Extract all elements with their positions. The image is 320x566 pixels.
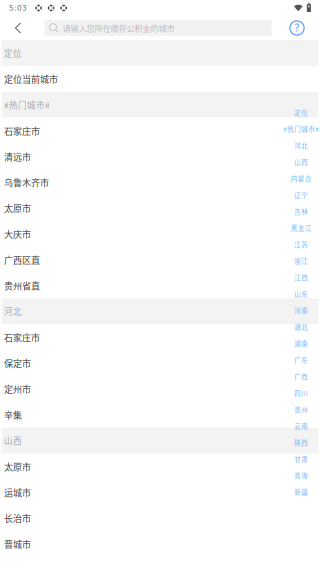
staticText: 湖南 (294, 339, 308, 348)
staticText: 江西 (294, 273, 308, 282)
staticText: 吉林 (294, 207, 308, 216)
button[interactable]: 浙江 (281, 253, 320, 269)
staticText: 长治市 (4, 511, 31, 525)
button[interactable]: 江西 (281, 269, 320, 286)
button[interactable]: 新疆 (281, 484, 320, 500)
staticText: 定位 (4, 47, 22, 59)
button[interactable]: 吉林 (281, 203, 320, 220)
staticText: 河北 (294, 141, 308, 150)
staticText: 乌鲁木齐市 (4, 176, 49, 189)
staticText: 新疆 (294, 487, 308, 497)
staticText: ? (294, 21, 300, 34)
button[interactable]: 石家庄市 (0, 324, 320, 350)
button[interactable]: 黑龙江 (281, 220, 320, 236)
staticText: 广西 (294, 372, 308, 381)
staticText: 云南 (294, 421, 308, 431)
staticText: 内蒙古 (291, 174, 312, 183)
button[interactable]: 请输入您所在缴存公积金的城市 (44, 20, 271, 36)
button[interactable]: 云南 (281, 418, 320, 434)
staticText: 清远市 (4, 150, 31, 163)
staticText: 湖北 (294, 322, 308, 332)
staticText: 定位 (294, 108, 308, 117)
staticText: 河北 (4, 305, 22, 318)
button[interactable]: 定州市 (0, 376, 320, 402)
button[interactable]: 太原市 (0, 454, 320, 479)
button[interactable]: 定位 (281, 104, 320, 121)
button[interactable]: #热门城市# (281, 121, 320, 137)
staticText: 石家庄市 (4, 124, 40, 137)
staticText: 四川 (294, 388, 308, 398)
staticText: 辽宁 (294, 190, 308, 200)
staticText: 运城市 (4, 486, 31, 499)
staticText: 江苏 (294, 240, 308, 249)
button[interactable]: 山西 (281, 154, 320, 170)
button[interactable]: 贵州 (281, 401, 320, 418)
staticText: 山西 (294, 157, 308, 167)
button[interactable]: 内蒙古 (281, 170, 320, 187)
staticText: 太原市 (4, 201, 31, 215)
button[interactable]: 返回 (0, 16, 36, 40)
staticText: 请输入您所在缴存公积金的城市 (63, 22, 175, 34)
staticText: 定州市 (4, 382, 31, 395)
button[interactable]: 定位当前城市 (0, 66, 320, 92)
button[interactable]: 石家庄市 (0, 118, 320, 144)
button[interactable]: 晋城市 (0, 531, 320, 557)
staticText: 大庆市 (4, 227, 31, 240)
button[interactable]: 太原市 (0, 195, 320, 221)
button[interactable]: 帮助 (285, 16, 309, 40)
button[interactable]: 陕西 (281, 434, 320, 451)
staticText: 石家庄市 (4, 331, 40, 344)
staticText: 陕西 (294, 438, 308, 447)
button[interactable]: 大庆市 (0, 221, 320, 247)
button[interactable]: 四川 (281, 385, 320, 401)
button[interactable]: 清远市 (0, 144, 320, 169)
button[interactable]: 辽宁 (281, 187, 320, 203)
button[interactable]: 乌鲁木齐市 (0, 169, 320, 195)
staticText: 山东 (294, 289, 308, 299)
staticText: 甘肃 (294, 454, 308, 464)
staticText: 浙江 (294, 256, 308, 266)
staticText: 黑龙江 (291, 223, 312, 233)
button[interactable]: 山东 (281, 286, 320, 302)
button[interactable]: 湖南 (281, 335, 320, 352)
button[interactable]: 青海 (281, 467, 320, 484)
button[interactable]: 广西 (281, 368, 320, 385)
button[interactable]: 长治市 (0, 505, 320, 531)
staticText: #热门城市# (283, 124, 319, 134)
button[interactable]: 甘肃 (281, 451, 320, 467)
staticText: 贵州省直 (4, 279, 40, 292)
button[interactable]: 保定市 (0, 350, 320, 376)
staticText: #热门城市# (4, 99, 50, 111)
button[interactable]: 贵州省直 (0, 273, 320, 298)
staticText: 广西区直 (4, 253, 40, 266)
staticText: 辛集 (4, 408, 22, 421)
button[interactable]: 辛集 (0, 402, 320, 428)
button[interactable]: 运城市 (0, 479, 320, 505)
button[interactable]: 河南 (281, 302, 320, 319)
staticText: 河南 (294, 306, 308, 315)
staticText: 5:03 (9, 4, 27, 12)
button[interactable]: 河北 (281, 137, 320, 154)
staticText: 定位当前城市 (4, 72, 58, 85)
staticText: 贵州 (294, 405, 308, 414)
button[interactable]: 江苏 (281, 236, 320, 253)
staticText: 山西 (4, 434, 22, 447)
button[interactable]: 广东 (281, 352, 320, 368)
staticText: 青海 (294, 471, 308, 480)
button[interactable]: 广西区直 (0, 247, 320, 273)
staticText: 晋城市 (4, 537, 31, 550)
staticText: 保定市 (4, 356, 31, 370)
staticText: 广东 (294, 355, 308, 365)
staticText: 太原市 (4, 460, 31, 473)
button[interactable]: 湖北 (281, 319, 320, 335)
